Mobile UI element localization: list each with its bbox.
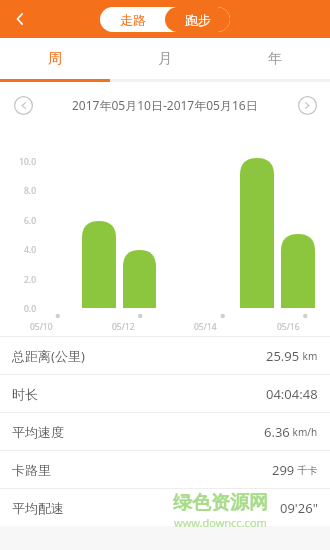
staticText: 4.0 xyxy=(10,244,36,256)
button[interactable]: 平均速度 xyxy=(0,413,330,450)
staticText: 总距离(公里) xyxy=(12,347,85,365)
staticText: 6.0 xyxy=(10,215,36,227)
staticText: 05/12 xyxy=(112,321,135,333)
staticText: 10.0 xyxy=(10,156,36,168)
staticText: 299 xyxy=(272,461,295,479)
staticText: www.downcc.com xyxy=(174,515,267,528)
staticText: 05/14 xyxy=(194,321,217,333)
staticText: 平均配速 xyxy=(12,500,64,516)
staticText: 04:04:48 xyxy=(266,385,318,403)
button[interactable]: 跑步 xyxy=(165,7,230,32)
staticText: 0.0 xyxy=(10,303,36,315)
staticText: 05/16 xyxy=(277,321,300,333)
staticText: 8.0 xyxy=(10,185,36,197)
button[interactable]: 走路 xyxy=(100,7,165,32)
staticText: 跑步 xyxy=(185,12,211,28)
staticText: 时长 xyxy=(12,386,38,402)
button[interactable]: 时长 xyxy=(0,375,330,412)
staticText: 卡路里 xyxy=(12,462,51,478)
staticText: 千卡 xyxy=(295,463,318,477)
button[interactable]: Next week xyxy=(290,88,324,122)
staticText: km xyxy=(300,349,318,363)
staticText: 绿色资源网 xyxy=(173,491,268,515)
staticText: 05/10 xyxy=(30,321,53,333)
staticText: 走路 xyxy=(120,12,146,28)
button[interactable]: 周 xyxy=(0,38,110,79)
staticText: 09'26" xyxy=(280,499,318,517)
staticText: km/h xyxy=(290,425,318,439)
button[interactable]: 月 xyxy=(110,38,220,79)
staticText: 2017年05月10日-2017年05月16日 xyxy=(72,97,258,113)
button[interactable]: 平均配速 xyxy=(0,489,330,526)
staticText: 平均速度 xyxy=(12,424,64,440)
staticText: 2.0 xyxy=(10,274,36,286)
button[interactable]: Back xyxy=(0,0,40,38)
button[interactable]: 总距离(公里) xyxy=(0,337,330,374)
button[interactable]: 年 xyxy=(220,38,330,79)
staticText: 周 xyxy=(48,50,62,68)
staticText: 年 xyxy=(268,50,282,68)
staticText: 月 xyxy=(158,50,172,68)
staticText: 6.36 xyxy=(264,423,290,441)
staticText: 25.95 xyxy=(266,347,300,365)
button[interactable]: 卡路里 xyxy=(0,451,330,488)
button[interactable]: Previous week xyxy=(6,88,40,122)
